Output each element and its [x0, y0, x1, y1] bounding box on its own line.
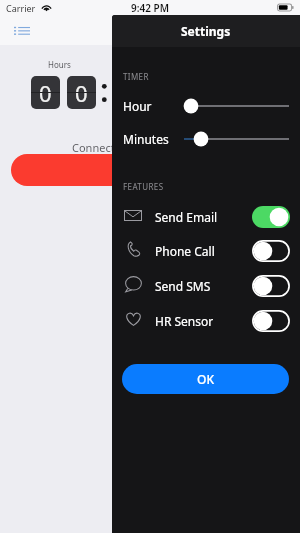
staticText: 0: [39, 78, 52, 108]
button[interactable]: Menu: [14, 26, 30, 36]
button[interactable]: Send Email: [112, 200, 300, 234]
staticText: 9:42 PM: [131, 1, 169, 15]
staticText: Settings: [181, 23, 231, 39]
button[interactable]: Phone Call: [112, 234, 300, 268]
staticText: Send Email: [155, 209, 218, 225]
button[interactable]: OK: [122, 364, 289, 394]
button[interactable]: Settings: [112, 15, 300, 47]
staticText: Hour: [123, 98, 152, 114]
staticText: Connect: [72, 140, 115, 152]
staticText: FEATURES: [123, 181, 164, 192]
staticText: Carrier: [6, 2, 36, 14]
staticText: 0: [75, 78, 88, 108]
button[interactable]: Off: [252, 310, 290, 332]
staticText: TIMER: [123, 71, 149, 82]
button[interactable]: On: [252, 206, 290, 228]
staticText: Hours: [48, 59, 71, 70]
button[interactable]: HR Sensor: [112, 304, 300, 338]
staticText: HR Sensor: [155, 313, 214, 329]
button[interactable]: Hour: [112, 92, 300, 120]
button[interactable]: [11, 154, 213, 186]
staticText: OK: [197, 371, 214, 387]
staticText: Phone Call: [155, 243, 215, 259]
button[interactable]: Minutes: [112, 125, 300, 153]
staticText: Send SMS: [155, 278, 211, 294]
button[interactable]: Off: [252, 240, 290, 262]
button[interactable]: Off: [252, 275, 290, 297]
staticText: Minutes: [123, 131, 169, 147]
button[interactable]: Send SMS: [112, 269, 300, 303]
